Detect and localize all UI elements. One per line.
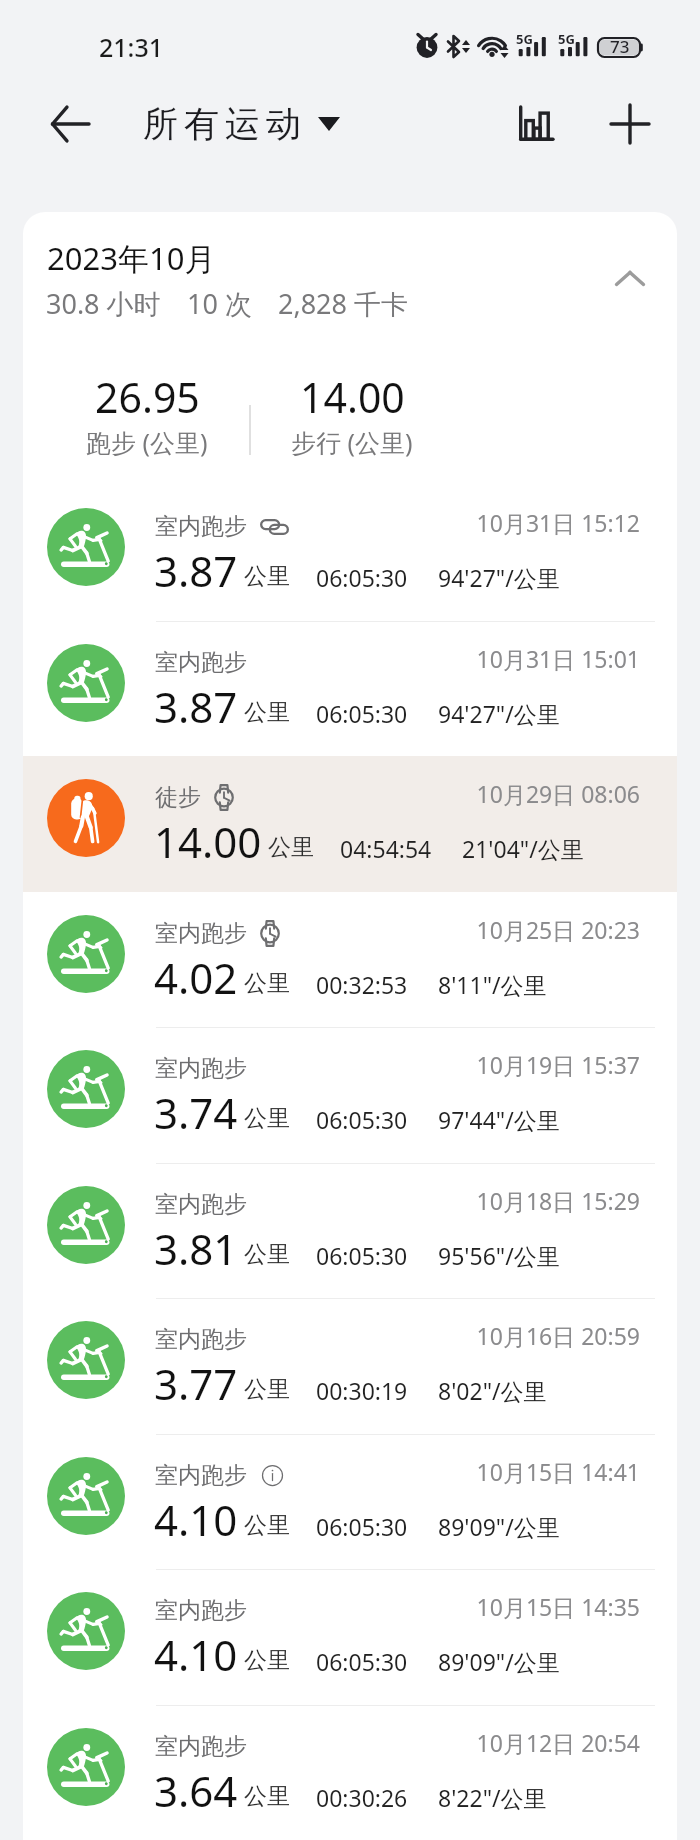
staticText: 3.77 [154,1355,238,1412]
staticText: 10月31日 15:01 [340,643,640,674]
staticText: 公里 [244,1375,290,1404]
staticText: 10月19日 15:37 [340,1049,640,1080]
staticText: 8'22"/公里 [438,1782,547,1813]
button[interactable]: 室内跑步 [23,1298,677,1434]
staticText: 室内跑步 [155,1732,247,1761]
staticText: 公里 [244,969,290,998]
staticText: 室内跑步 [155,1461,247,1490]
button[interactable]: 室内跑步 [23,1027,677,1163]
staticText: 10月16日 20:59 [340,1320,640,1351]
button[interactable]: 室内跑步 [23,1569,677,1705]
staticText: 5G [516,30,533,48]
other: 收起 [615,268,645,288]
button[interactable]: 添加运动 [590,83,670,164]
staticText: 4.10 [154,1491,238,1548]
button[interactable]: 室内跑步 [23,1163,677,1299]
staticText: 97'44"/公里 [438,1104,560,1135]
staticText: 3.64 [154,1762,238,1819]
staticText: 04:54:54 [340,833,432,864]
staticText: 步行 (公里) [291,425,413,459]
staticText: 73 [610,35,630,58]
button[interactable]: 返回 [30,83,110,164]
staticText: 2023年10月 [47,237,216,279]
staticText: 10月29日 08:06 [340,778,640,809]
staticText: 室内跑步 [155,648,247,677]
staticText: 公里 [244,1240,290,1269]
staticText: 94'27"/公里 [438,698,560,729]
staticText: 公里 [244,1104,290,1133]
staticText: 公里 [268,833,314,862]
staticText: 10月15日 14:41 [340,1456,640,1487]
staticText: 10月18日 15:29 [340,1185,640,1216]
staticText: 06:05:30 [316,1511,408,1542]
staticText: 室内跑步 [155,512,247,541]
button[interactable]: 室内跑步 [23,485,677,621]
button[interactable]: 室内跑步 [23,1434,677,1570]
staticText: 公里 [244,562,290,591]
staticText: 徒步 [155,783,201,812]
staticText: 26.95 [95,369,200,425]
staticText: 06:05:30 [316,1240,408,1271]
staticText: 8'02"/公里 [438,1375,547,1406]
button[interactable]: 所有运动 [140,83,340,164]
staticText: 21'04"/公里 [462,833,584,864]
staticText: 3.74 [154,1084,238,1141]
staticText: 4.10 [154,1626,238,1683]
staticText: 06:05:30 [316,698,408,729]
staticText: 14.00 [154,813,262,870]
staticText: 4.02 [154,949,238,1006]
staticText: 公里 [244,1511,290,1540]
staticText: 10月15日 14:35 [340,1591,640,1622]
staticText: 公里 [244,1646,290,1675]
staticText: 10月12日 20:54 [340,1727,640,1758]
staticText: 3.81 [154,1220,238,1277]
staticText: 所有运动 [140,102,304,146]
staticText: 8'11"/公里 [438,969,547,1000]
staticText: 06:05:30 [316,562,408,593]
staticText: 公里 [244,698,290,727]
staticText: 06:05:30 [316,1104,408,1135]
staticText: 10 次 [187,285,252,322]
staticText: 06:05:30 [316,1646,408,1677]
button[interactable]: 室内跑步 [23,892,677,1028]
button[interactable]: 运动统计 [496,83,576,164]
staticText: 00:32:53 [316,969,408,1000]
staticText: 10月25日 20:23 [340,914,640,945]
button[interactable]: 徒步 [23,756,677,892]
staticText: 3.87 [154,678,238,735]
staticText: 94'27"/公里 [438,562,560,593]
staticText: 10月31日 15:12 [340,507,640,538]
staticText: 21:31 [99,30,164,64]
staticText: 室内跑步 [155,1054,247,1083]
staticText: 95'56"/公里 [438,1240,560,1271]
staticText: 00:30:26 [316,1782,408,1813]
button[interactable]: 室内跑步 [23,1705,677,1840]
staticText: 89'09"/公里 [438,1511,560,1542]
staticText: 室内跑步 [155,919,247,948]
button[interactable]: 2023年10月 [23,212,677,485]
staticText: 00:30:19 [316,1375,408,1406]
staticText: 室内跑步 [155,1596,247,1625]
staticText: 公里 [244,1782,290,1811]
staticText: 室内跑步 [155,1325,247,1354]
staticText: 室内跑步 [155,1190,247,1219]
staticText: 14.00 [300,369,405,425]
staticText: 30.8 小时 [46,285,161,322]
staticText: 89'09"/公里 [438,1646,560,1677]
button[interactable]: 室内跑步 [23,621,677,757]
staticText: 5G [558,30,575,48]
staticText: 跑步 (公里) [86,425,208,459]
staticText: 2,828 千卡 [278,285,409,322]
staticText: 3.87 [154,542,238,599]
